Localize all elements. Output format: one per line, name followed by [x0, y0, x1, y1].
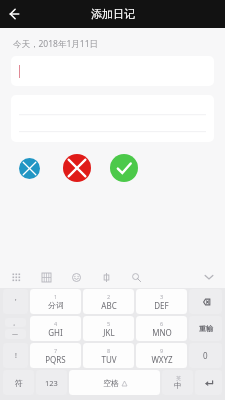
- button[interactable]: Hide keyboard: [201, 269, 217, 285]
- staticText: MNO: [152, 327, 172, 338]
- button[interactable]: !: [3, 343, 28, 368]
- button[interactable]: Emoji: [68, 269, 84, 285]
- button[interactable]: 2: [83, 289, 134, 314]
- button[interactable]: Cancel: [63, 154, 91, 182]
- staticText: 今天，2018年1月11日: [13, 38, 99, 50]
- staticText: 4: [54, 320, 58, 327]
- button[interactable]: 9: [136, 343, 187, 368]
- staticText: ': [15, 297, 17, 307]
- staticText: 重输: [199, 324, 213, 333]
- staticText: 。: [13, 319, 19, 327]
- button[interactable]: Voice: [98, 269, 114, 285]
- button[interactable]: 英: [162, 370, 193, 395]
- staticText: GHI: [48, 327, 63, 338]
- button[interactable]: 。: [5, 318, 26, 327]
- staticText: 9: [160, 347, 164, 354]
- button[interactable]: Backspace: [189, 289, 222, 314]
- button[interactable]: 7: [30, 343, 81, 368]
- staticText: !: [15, 351, 17, 361]
- button[interactable]: 123: [36, 370, 67, 395]
- staticText: 英: [176, 375, 181, 381]
- staticText: —: [12, 330, 19, 338]
- button[interactable]: 0: [189, 343, 222, 368]
- button[interactable]: Table: [38, 269, 54, 285]
- staticText: 1: [54, 293, 58, 300]
- button[interactable]: 符: [3, 370, 34, 395]
- staticText: 5: [107, 320, 111, 327]
- staticText: ABC: [101, 300, 117, 311]
- staticText: 空格: [103, 378, 119, 388]
- button[interactable]: ': [3, 289, 28, 314]
- button[interactable]: 8: [83, 343, 134, 368]
- button[interactable]: 1: [30, 289, 81, 314]
- button[interactable]: Clear: [19, 158, 40, 179]
- staticText: 分词: [48, 300, 64, 310]
- staticText: PQRS: [45, 354, 66, 365]
- button[interactable]: Save: [110, 154, 138, 182]
- button[interactable]: 5: [83, 316, 134, 341]
- staticText: WXYZ: [151, 354, 173, 365]
- staticText: 0: [203, 350, 208, 361]
- staticText: 6: [160, 320, 164, 327]
- button[interactable]: 4: [30, 316, 81, 341]
- staticText: DEF: [154, 300, 169, 311]
- button[interactable]: Grid: [8, 269, 24, 285]
- staticText: 123: [45, 378, 58, 388]
- staticText: 7: [54, 347, 58, 354]
- staticText: TUV: [101, 354, 117, 365]
- staticText: 3: [160, 293, 164, 300]
- button[interactable]: Search: [128, 269, 144, 285]
- staticText: 符: [15, 378, 23, 388]
- staticText: 添加日记: [91, 7, 135, 21]
- button[interactable]: 6: [136, 316, 187, 341]
- button[interactable]: [11, 56, 214, 86]
- button[interactable]: Enter: [195, 370, 222, 395]
- staticText: JKL: [103, 327, 115, 338]
- button[interactable]: 重输: [189, 316, 222, 341]
- button[interactable]: Back: [0, 0, 28, 28]
- button[interactable]: —: [5, 329, 26, 339]
- button[interactable]: 3: [136, 289, 187, 314]
- staticText: 2: [107, 293, 111, 300]
- button[interactable]: 空格: [69, 370, 160, 395]
- staticText: 中: [174, 381, 182, 390]
- staticText: 8: [107, 347, 111, 354]
